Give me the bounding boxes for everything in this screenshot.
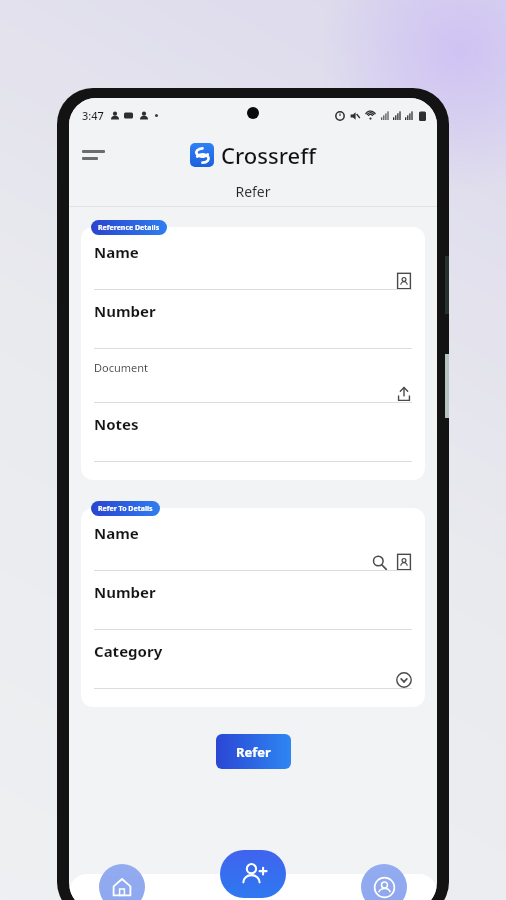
staticText: Name	[94, 242, 139, 262]
button[interactable]: Name	[94, 242, 412, 301]
staticText: Refer	[235, 182, 271, 201]
button[interactable]: Select category	[396, 672, 412, 688]
button[interactable]: Refer	[69, 177, 437, 206]
button[interactable]: Number	[94, 582, 412, 641]
staticText: Refer To Details	[98, 504, 153, 514]
button[interactable]: Profile	[361, 864, 407, 900]
button[interactable]: Notes	[94, 414, 412, 473]
staticText: Reference Details	[98, 223, 160, 233]
staticText: Document	[94, 360, 149, 375]
button[interactable]: Home	[99, 864, 145, 900]
staticText: Number	[94, 582, 156, 602]
button[interactable]: Number	[94, 301, 412, 360]
button[interactable]: Upload document	[396, 386, 412, 402]
staticText: Category	[94, 641, 163, 661]
button[interactable]: Pick contact	[396, 273, 412, 289]
staticText: Name	[94, 523, 139, 543]
button[interactable]: Refer	[216, 734, 291, 769]
button[interactable]: Name	[94, 523, 412, 582]
staticText: Refer	[236, 743, 271, 761]
button[interactable]: Category	[94, 641, 412, 700]
staticText: Crossreff	[221, 140, 316, 170]
button[interactable]: Document	[94, 360, 412, 414]
button[interactable]: Refer	[220, 850, 286, 898]
staticText: Notes	[94, 414, 139, 434]
button[interactable]: Menu	[82, 144, 112, 166]
staticText: Number	[94, 301, 156, 321]
staticText: 3:47	[82, 108, 104, 123]
button[interactable]: Pick contact	[396, 554, 412, 570]
button[interactable]: Search	[372, 555, 387, 570]
